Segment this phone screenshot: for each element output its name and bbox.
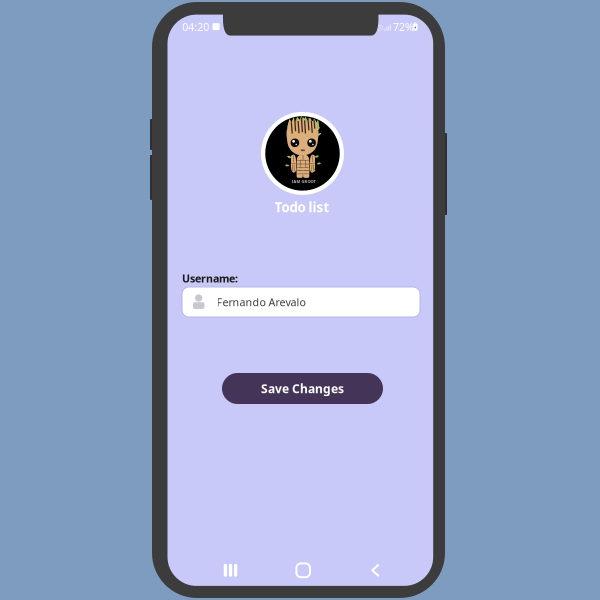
staticText: 72% [393,20,414,34]
staticText: Save Changes [261,380,344,396]
staticText: Username: [182,271,238,285]
staticText: I AM GROOT [292,179,316,184]
button[interactable]: Save Changes [222,373,383,404]
button[interactable]: Recent apps [211,557,249,583]
button[interactable]: Home [284,557,322,583]
staticText: Fernando Arevalo [216,295,305,309]
button[interactable]: Fernando Arevalo [182,287,420,317]
staticText: 04:20 [182,20,209,34]
staticText: Todo list [274,198,329,216]
button[interactable]: Back [356,557,394,583]
